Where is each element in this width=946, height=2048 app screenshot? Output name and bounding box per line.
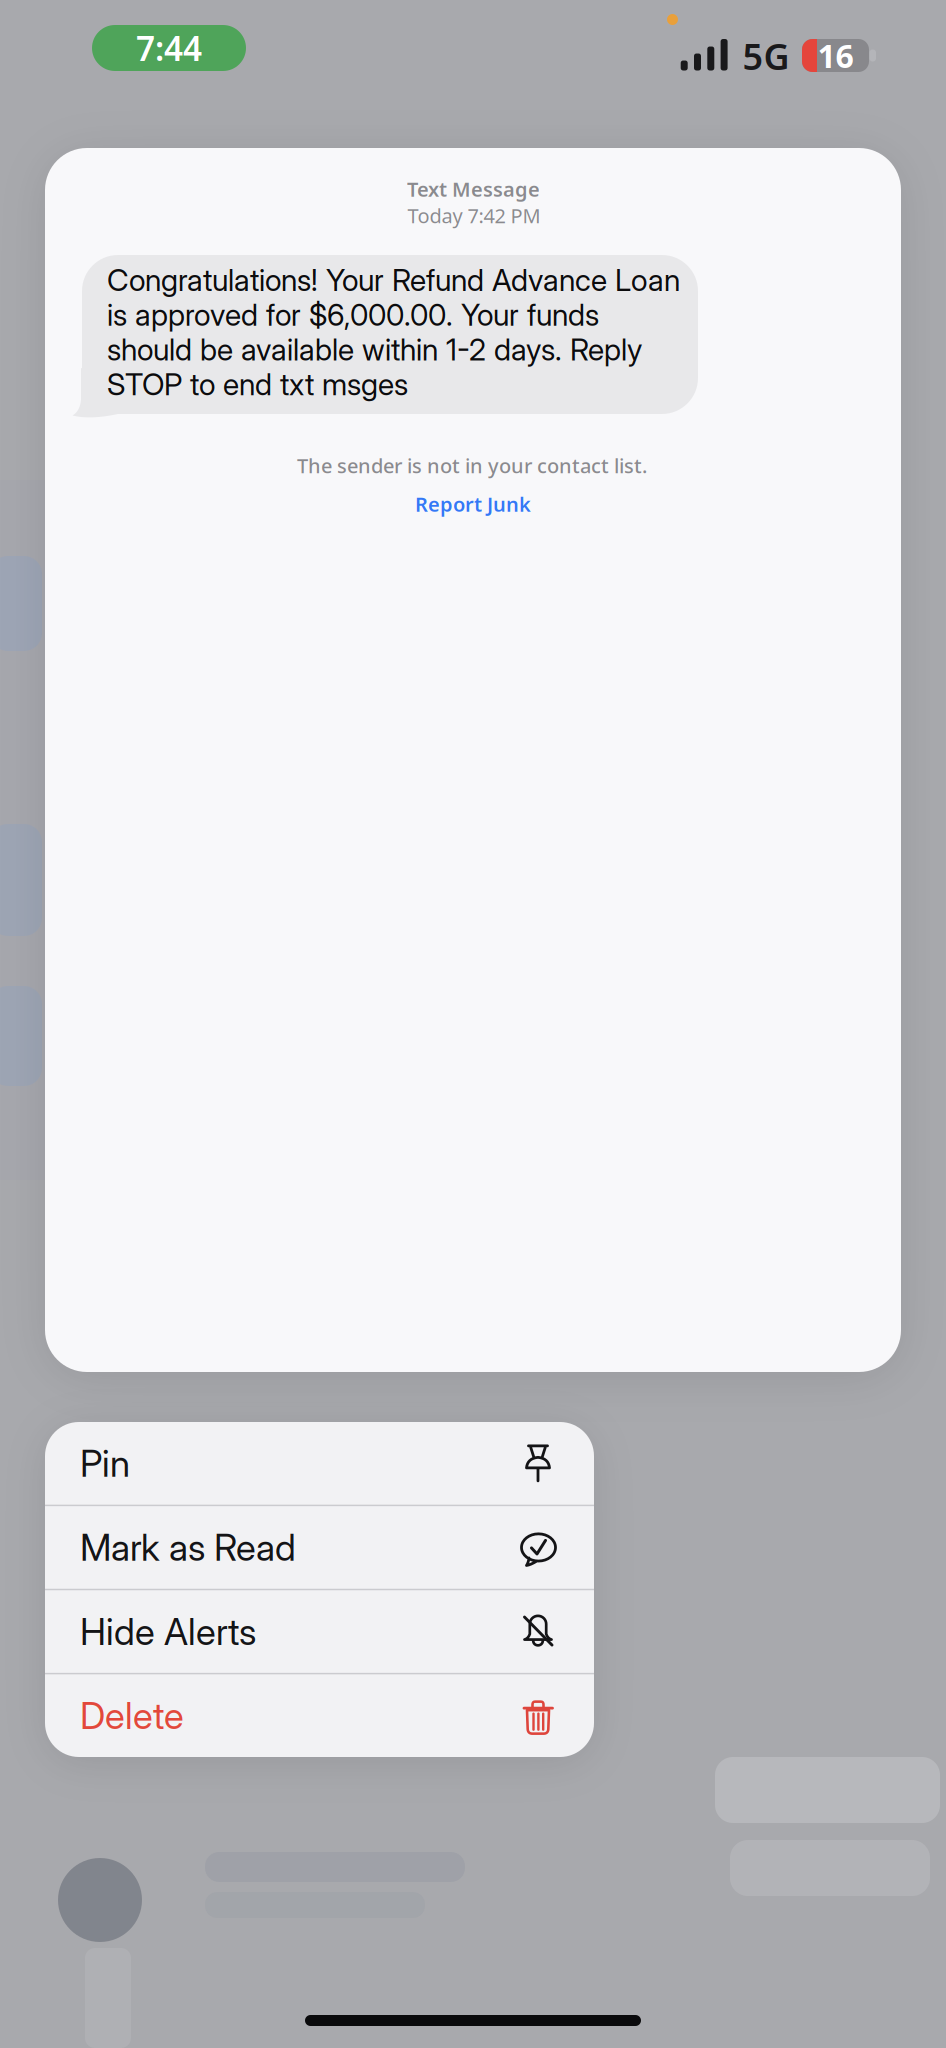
staticText: Mark as Read: [80, 1525, 296, 1570]
staticText: The sender is not in your contact list.: [297, 452, 647, 479]
button[interactable]: Text Message: [45, 148, 901, 1372]
button[interactable]: Hide Alerts: [45, 1590, 594, 1673]
button[interactable]: Mark as Read: [45, 1506, 594, 1589]
staticText: 16: [817, 34, 853, 77]
staticText: Delete: [80, 1693, 184, 1738]
staticText: 7:44: [136, 26, 202, 70]
button[interactable]: Pin: [45, 1422, 594, 1505]
staticText: Text Message: [407, 176, 540, 202]
staticText: Congratulations! Your Refund Advance Loa…: [107, 262, 680, 402]
button[interactable]: Report Junk: [415, 491, 531, 517]
staticText: Report Junk: [415, 491, 531, 517]
staticText: Pin: [80, 1441, 130, 1486]
button[interactable]: 7:44: [92, 25, 246, 71]
staticText: 5G: [742, 32, 789, 80]
button[interactable]: Delete: [45, 1674, 594, 1757]
staticText: Hide Alerts: [80, 1609, 256, 1654]
staticText: Today 7:42 PM: [407, 202, 540, 229]
